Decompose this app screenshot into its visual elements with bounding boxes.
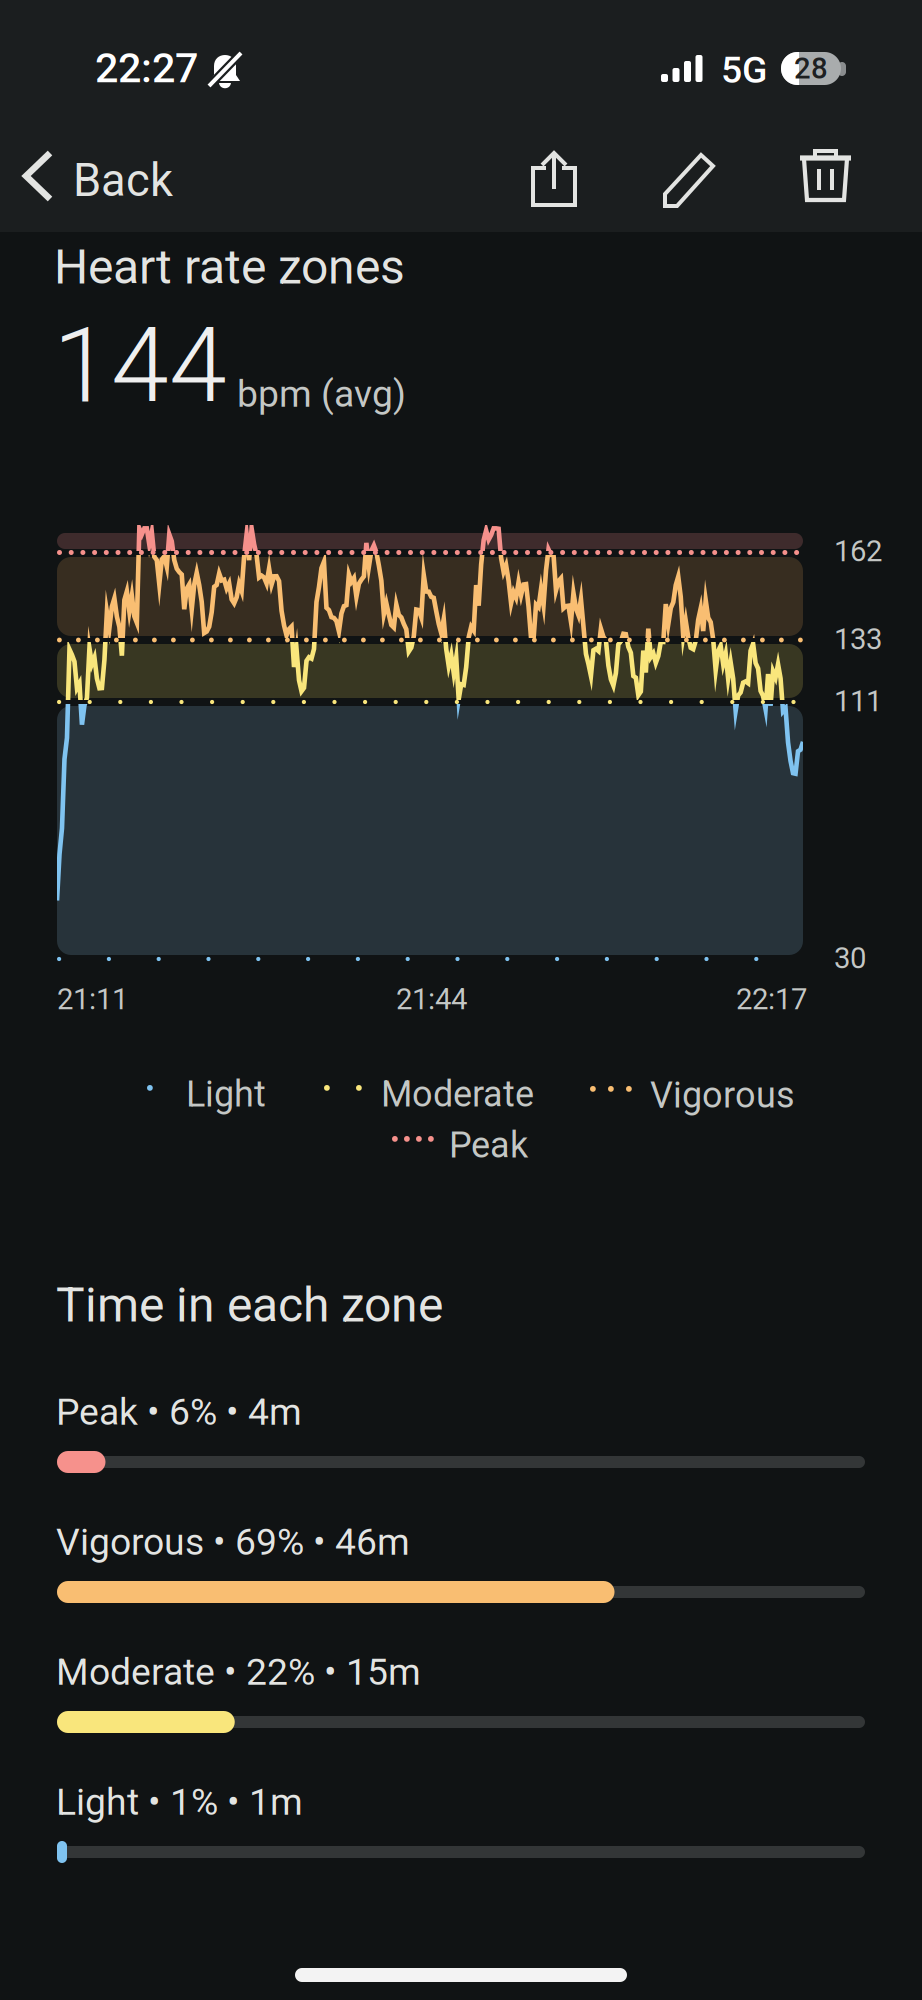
staticText: Peak: [449, 1124, 528, 1166]
staticText: Time in each zone: [56, 1277, 443, 1333]
button[interactable]: Share: [502, 120, 602, 232]
staticText: 22:17: [736, 982, 807, 1016]
button[interactable]: Delete: [774, 120, 874, 232]
staticText: Peak • 6% • 4m: [56, 1390, 302, 1434]
staticText: Vigorous: [650, 1074, 795, 1116]
staticText: 144: [53, 305, 227, 427]
staticText: 21:11: [57, 982, 128, 1016]
staticText: Light • 1% • 1m: [56, 1780, 303, 1824]
button[interactable]: Edit: [637, 120, 737, 232]
staticText: Vigorous • 69% • 46m: [56, 1520, 410, 1564]
staticText: 162: [834, 534, 882, 568]
staticText: 30: [834, 941, 866, 975]
staticText: bpm (avg): [237, 372, 406, 416]
staticText: Moderate: [381, 1073, 534, 1115]
staticText: Heart rate zones: [54, 239, 405, 295]
staticText: 21:44: [396, 982, 467, 1016]
staticText: 5G: [721, 48, 767, 92]
button[interactable]: Back: [0, 120, 230, 232]
staticText: Moderate • 22% • 15m: [56, 1650, 421, 1694]
staticText: Light: [186, 1073, 266, 1115]
staticText: 111: [834, 684, 882, 718]
staticText: 133: [834, 622, 882, 656]
staticText: Back: [73, 154, 173, 207]
staticText: 22:27: [95, 44, 198, 92]
staticText: 28: [794, 51, 828, 86]
